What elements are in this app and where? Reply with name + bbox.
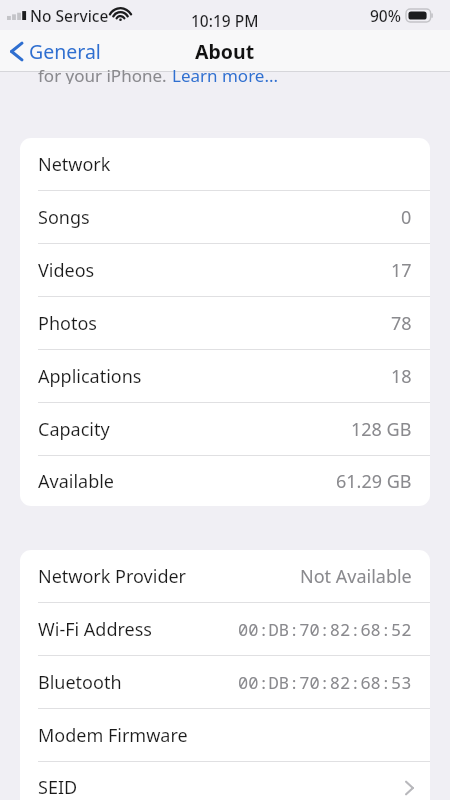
staticText: Capacity	[38, 417, 110, 442]
button[interactable]: Modem Firmware	[20, 709, 430, 762]
button[interactable]: Wi-Fi Address	[20, 603, 430, 656]
staticText: Wi-Fi Address	[38, 617, 152, 642]
staticText: Not Available	[300, 564, 412, 589]
button[interactable]: Applications	[20, 350, 430, 403]
staticText: Network	[38, 152, 111, 177]
staticText: Songs	[38, 205, 90, 230]
staticText: 128 GB	[351, 417, 412, 442]
button[interactable]: SEID	[20, 762, 430, 800]
button[interactable]: Songs	[20, 191, 430, 244]
button[interactable]: Learn more...	[172, 64, 279, 84]
button[interactable]: Bluetooth	[20, 656, 430, 709]
button[interactable]: Videos	[20, 244, 430, 297]
staticText: Available	[38, 469, 114, 494]
staticText: 17	[391, 258, 412, 283]
other: SEID details	[405, 780, 414, 796]
button[interactable]: Network	[20, 138, 430, 191]
staticText: 61.29 GB	[336, 469, 412, 494]
staticText: Photos	[38, 311, 97, 336]
button[interactable]: Network Provider	[20, 550, 430, 603]
staticText: 78	[391, 311, 412, 336]
staticText: 18	[391, 364, 412, 389]
staticText: 00:DB:70:82:68:53	[238, 671, 412, 694]
staticText: Bluetooth	[38, 670, 122, 695]
staticText: About	[195, 38, 255, 65]
staticText: Modem Firmware	[38, 723, 188, 748]
staticText: No Service	[30, 5, 109, 26]
staticText: Videos	[38, 258, 95, 283]
staticText: Applications	[38, 364, 142, 389]
staticText: 90%	[370, 5, 401, 26]
button[interactable]: Photos	[20, 297, 430, 350]
staticText: 00:DB:70:82:68:52	[238, 618, 412, 641]
staticText: 10:19 PM	[191, 10, 259, 31]
staticText: for your iPhone.	[38, 64, 172, 84]
button[interactable]: Available	[20, 456, 430, 506]
staticText: 0	[401, 205, 412, 230]
button[interactable]: Capacity	[20, 403, 430, 456]
staticText: General	[29, 38, 101, 65]
button[interactable]: General	[0, 30, 111, 72]
staticText: SEID	[38, 775, 78, 800]
staticText: Network Provider	[38, 564, 187, 589]
